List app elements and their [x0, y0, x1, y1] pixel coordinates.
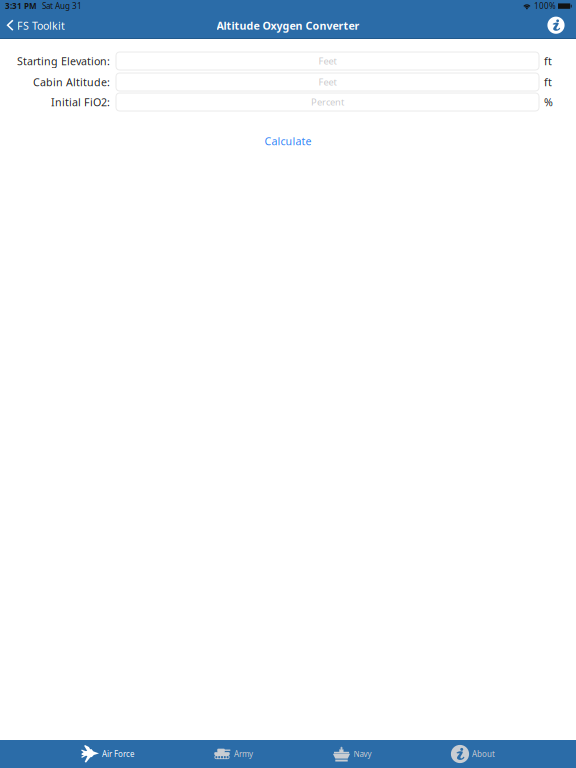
button[interactable]: Info — [540, 12, 572, 38]
button[interactable]: Army — [174, 740, 292, 768]
button[interactable]: FS Toolkit — [0, 12, 73, 38]
staticText: Navy — [353, 749, 371, 759]
staticText: Feet — [318, 76, 336, 88]
staticText: Sat Aug 31 — [42, 1, 82, 11]
button[interactable]: Feet — [116, 73, 539, 91]
button[interactable]: About — [414, 740, 532, 768]
staticText: % — [544, 95, 553, 109]
staticText: Army — [234, 749, 253, 759]
button[interactable]: Percent — [116, 93, 539, 111]
staticText: Starting Elevation: — [17, 54, 110, 68]
staticText: ft — [544, 75, 552, 89]
staticText: Initial FiO2: — [51, 95, 110, 109]
staticText: FS Toolkit — [17, 18, 65, 33]
staticText: About — [472, 749, 495, 759]
staticText: 3:31 PM — [5, 1, 37, 11]
staticText: Cabin Altitude: — [33, 75, 110, 89]
staticText: Altitude Oxygen Converter — [216, 18, 359, 33]
staticText: Percent — [311, 96, 344, 108]
button[interactable]: Calculate — [228, 131, 348, 151]
staticText: Air Force — [102, 749, 135, 759]
staticText: Feet — [318, 55, 336, 67]
button[interactable]: Navy — [293, 740, 411, 768]
staticText: ft — [544, 54, 552, 68]
button[interactable]: Air Force — [49, 740, 167, 768]
staticText: 100% — [534, 1, 556, 11]
button[interactable]: Feet — [116, 52, 539, 70]
staticText: Calculate — [264, 134, 311, 148]
